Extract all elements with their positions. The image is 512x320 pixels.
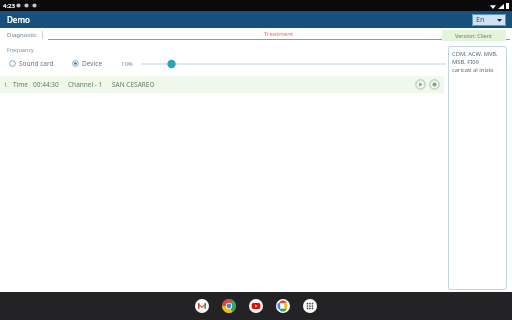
button[interactable]: Diagnostic bbox=[5, 30, 39, 40]
button[interactable]: Chrome bbox=[222, 299, 236, 313]
button[interactable]: Treatment bbox=[46, 29, 512, 41]
staticText: 4:23 bbox=[3, 2, 15, 10]
button[interactable]: Stop bbox=[429, 79, 440, 90]
staticText: 00:44:30 bbox=[33, 80, 59, 89]
button[interactable]: Play bbox=[415, 79, 426, 90]
staticText: Time bbox=[13, 80, 29, 89]
button[interactable]: Sound card bbox=[7, 57, 56, 70]
button[interactable]: CDM, ACW, MVB, MSB, FI09 caricati al ini… bbox=[448, 46, 507, 290]
staticText: Sound card bbox=[19, 59, 54, 68]
staticText: SAN CESAREO bbox=[112, 80, 155, 89]
staticText: Channel - 1 bbox=[68, 80, 103, 89]
button[interactable]: YouTube bbox=[249, 299, 263, 313]
button[interactable]: Frequency slider bbox=[141, 59, 446, 69]
staticText: Diagnostic bbox=[7, 31, 37, 39]
button[interactable]: Device bbox=[70, 57, 105, 70]
staticText: Treatment bbox=[264, 30, 294, 38]
staticText: 1. bbox=[4, 81, 9, 88]
staticText: 10% bbox=[121, 60, 133, 68]
staticText: En bbox=[476, 15, 485, 25]
staticText: Demo bbox=[7, 14, 30, 25]
button[interactable]: Photos bbox=[276, 299, 290, 313]
staticText: Version: Client bbox=[455, 32, 493, 39]
staticText: Device bbox=[82, 59, 103, 68]
button[interactable]: 1. bbox=[0, 76, 444, 93]
staticText: Frequency bbox=[7, 46, 34, 53]
button[interactable]: All apps bbox=[303, 299, 317, 313]
staticText: CDM, ACW, MVB, MSB, FI09 caricati al ini… bbox=[452, 50, 498, 74]
button[interactable]: En bbox=[472, 14, 506, 26]
button[interactable]: Gmail bbox=[195, 299, 209, 313]
